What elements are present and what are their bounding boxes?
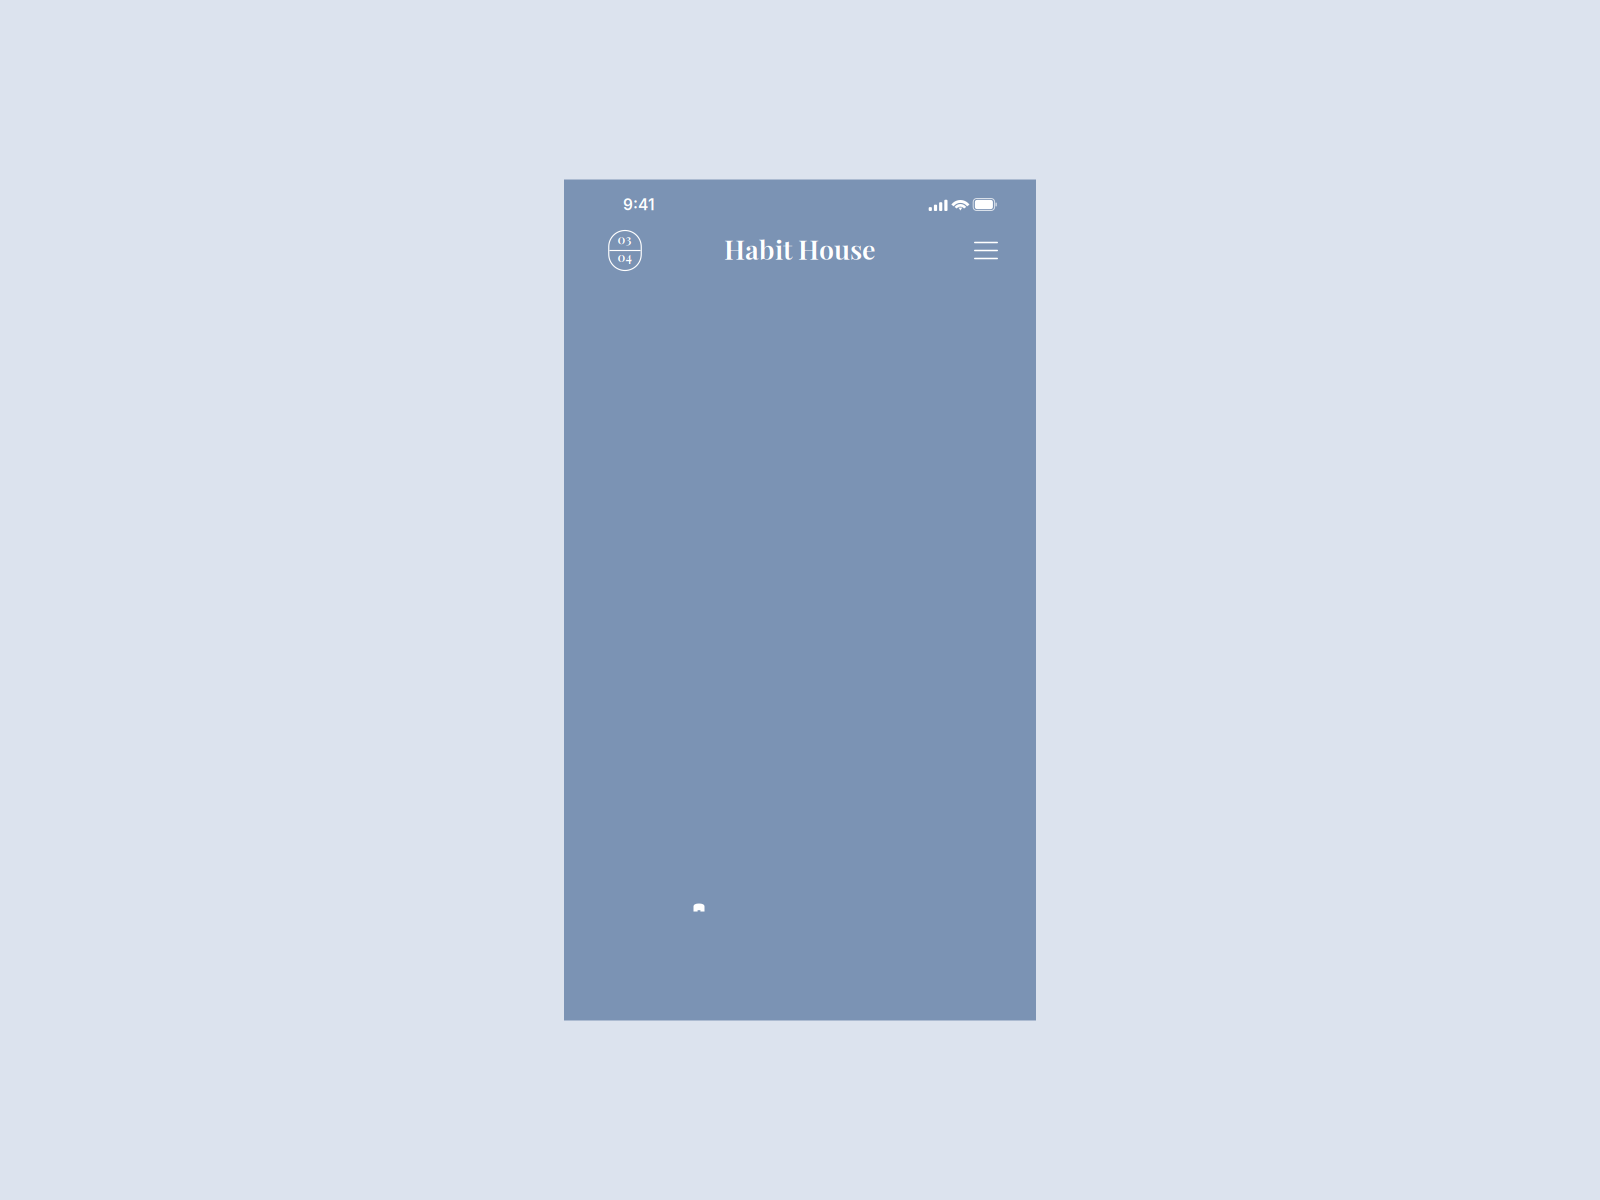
staticText: 9:41 [623, 195, 655, 214]
button[interactable]: Date 03 04 [604, 227, 646, 273]
button[interactable]: Menu [965, 227, 1007, 273]
staticText: 03 [617, 231, 631, 247]
staticText: Habit House [724, 231, 876, 266]
staticText: 04 [617, 249, 631, 265]
